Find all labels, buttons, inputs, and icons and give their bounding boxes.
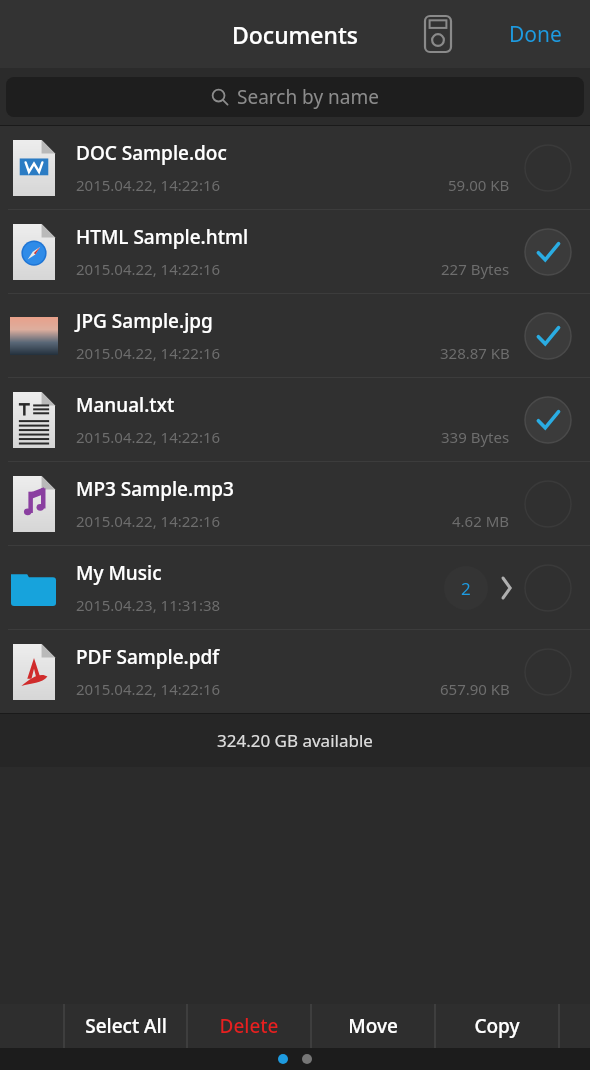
staticText: DOC Sample.doc (76, 140, 227, 166)
staticText: 2 (461, 577, 471, 600)
staticText: 324.20 GB available (217, 729, 373, 752)
staticText: 227 Bytes (441, 259, 510, 279)
staticText: My Music (76, 560, 162, 586)
button[interactable]: JPG Sample.jpg (0, 294, 590, 377)
staticText: 2015.04.22, 14:22:16 (76, 175, 221, 195)
staticText: 339 Bytes (441, 427, 510, 447)
button[interactable]: Done (501, 12, 570, 57)
staticText: 328.87 KB (440, 343, 510, 363)
staticText: 2015.04.22, 14:22:16 (76, 343, 221, 363)
button[interactable]: Delete (188, 1004, 310, 1048)
staticText: Done (509, 20, 562, 49)
button[interactable]: My Music (0, 546, 590, 629)
staticText: 2015.04.22, 14:22:16 (76, 427, 221, 447)
button[interactable]: Select All (65, 1004, 186, 1048)
staticText: Move (348, 1013, 398, 1039)
staticText: Search by name (237, 84, 379, 110)
button[interactable]: Search by name (6, 77, 584, 117)
staticText: Manual.txt (76, 392, 175, 418)
staticText: 2015.04.22, 14:22:16 (76, 679, 221, 699)
staticText: 2015.04.23, 11:31:38 (76, 595, 221, 615)
button[interactable]: Manual.txt (0, 378, 590, 461)
button[interactable]: PDF Sample.pdf (0, 630, 590, 713)
staticText: MP3 Sample.mp3 (76, 476, 234, 502)
button[interactable]: Selected (524, 312, 572, 360)
staticText: HTML Sample.html (76, 224, 249, 250)
button[interactable]: Device (416, 12, 460, 56)
button[interactable]: Selected (524, 228, 572, 276)
button[interactable]: HTML Sample.html (0, 210, 590, 293)
button[interactable]: MP3 Sample.mp3 (0, 462, 590, 545)
staticText: 4.62 MB (452, 511, 510, 531)
button[interactable]: Copy (436, 1004, 558, 1048)
staticText: 2015.04.22, 14:22:16 (76, 259, 221, 279)
staticText: 2015.04.22, 14:22:16 (76, 511, 221, 531)
button[interactable]: Selected (524, 396, 572, 444)
staticText: 657.90 KB (440, 679, 510, 699)
staticText: Delete (219, 1013, 279, 1039)
staticText: JPG Sample.jpg (76, 308, 213, 334)
button[interactable]: DOC Sample.doc (0, 126, 590, 209)
button[interactable]: 2 (444, 566, 488, 610)
staticText: Copy (474, 1013, 520, 1039)
staticText: Select All (85, 1013, 167, 1039)
staticText: 59.00 KB (448, 175, 510, 195)
button[interactable]: Move (312, 1004, 434, 1048)
staticText: PDF Sample.pdf (76, 644, 220, 670)
staticText: Documents (232, 19, 358, 50)
